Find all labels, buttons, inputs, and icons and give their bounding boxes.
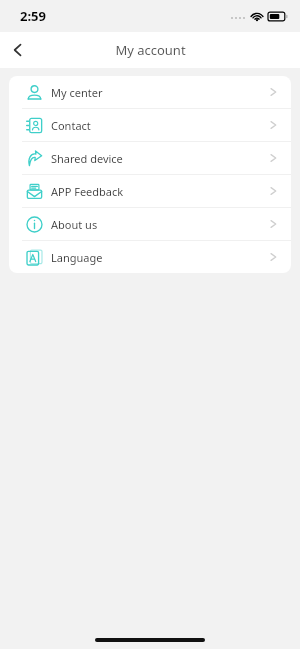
staticText: Shared device: [51, 151, 123, 166]
staticText: Contact: [51, 118, 91, 133]
staticText: 2:59: [20, 7, 46, 25]
staticText: APP Feedback: [51, 184, 124, 199]
staticText: My center: [51, 85, 103, 100]
button[interactable]: About us: [9, 208, 291, 240]
staticText: About us: [51, 217, 98, 232]
staticText: My account: [115, 41, 186, 59]
button[interactable]: Language: [9, 241, 291, 273]
button[interactable]: Shared device: [9, 142, 291, 174]
staticText: Language: [51, 250, 103, 265]
button[interactable]: APP Feedback: [9, 175, 291, 207]
button[interactable]: My center: [9, 76, 291, 108]
button[interactable]: Back: [0, 32, 36, 68]
button[interactable]: Contact: [9, 109, 291, 141]
